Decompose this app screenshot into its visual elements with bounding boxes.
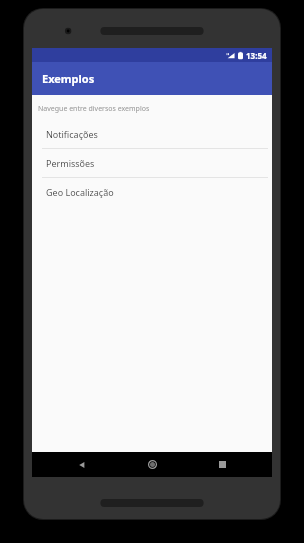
staticText: 13:54 [246, 50, 267, 61]
staticText: Navegue entre diversos exemplos [38, 104, 150, 114]
button[interactable]: Permissões [32, 149, 272, 177]
button[interactable]: Geo Localização [32, 178, 272, 206]
button[interactable]: Home [132, 452, 172, 477]
button[interactable]: Notificações [32, 120, 272, 148]
button[interactable]: Back [62, 452, 102, 477]
staticText: Geo Localização [46, 186, 114, 198]
button[interactable]: Recent apps [202, 452, 242, 477]
staticText: Notificações [46, 128, 98, 140]
staticText: Exemplos [42, 71, 95, 86]
staticText: Permissões [46, 157, 95, 169]
